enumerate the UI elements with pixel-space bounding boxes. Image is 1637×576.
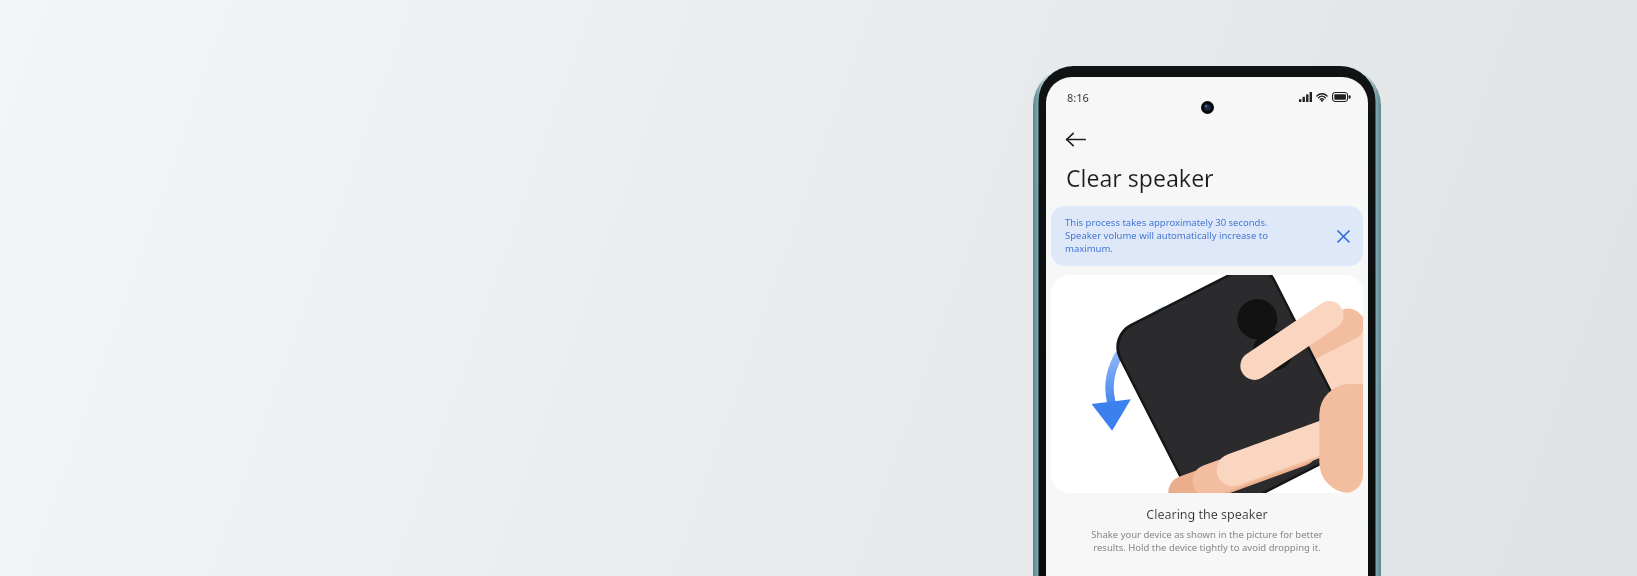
staticText: Clearing the speaker xyxy=(1046,506,1368,523)
staticText: 8:16 xyxy=(1067,90,1089,105)
staticText: Clear speaker xyxy=(1066,162,1214,193)
button[interactable]: This process takes approximately 30 seco… xyxy=(1051,206,1363,266)
staticText: This process takes approximately 30 seco… xyxy=(1065,216,1330,255)
staticText: Shake your device as shown in the pictur… xyxy=(1046,528,1368,554)
button[interactable]: Dismiss xyxy=(1330,223,1356,249)
button[interactable]: Back xyxy=(1055,119,1095,159)
